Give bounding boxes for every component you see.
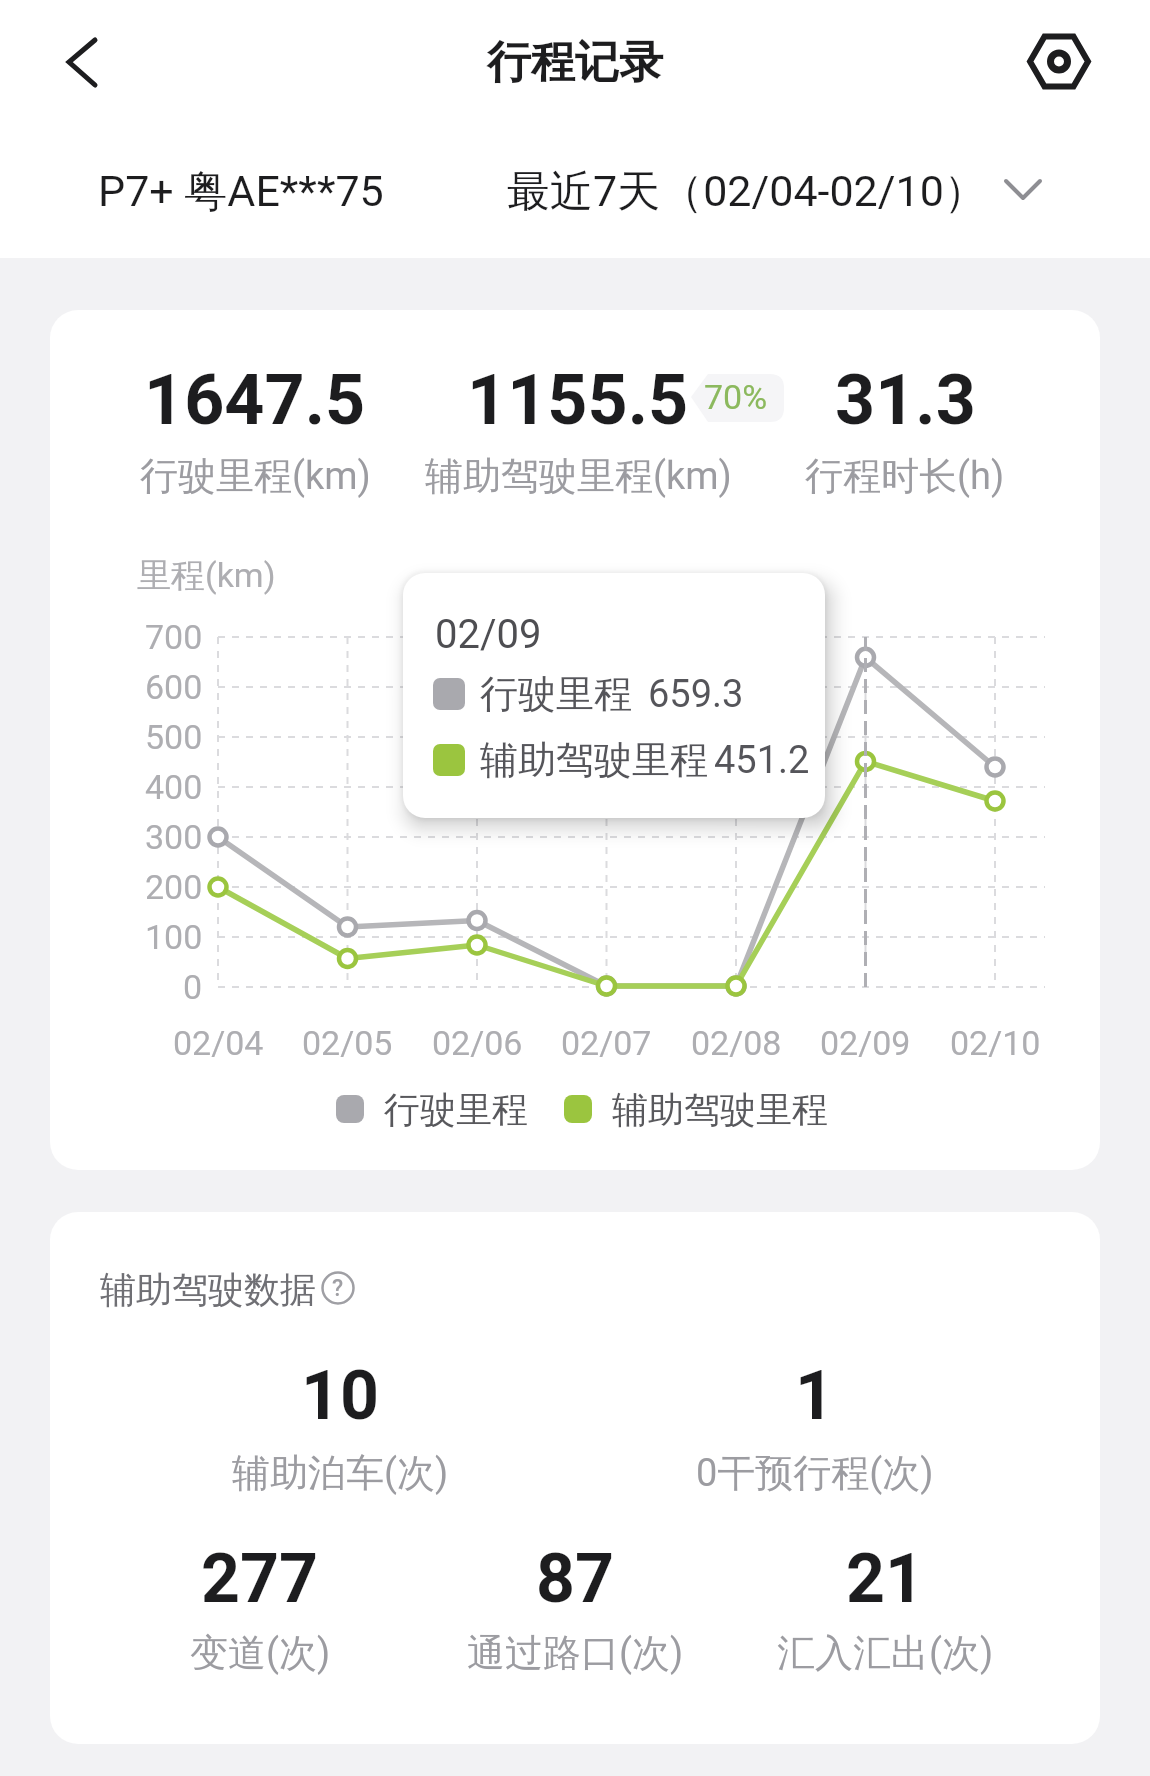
staticText: 277 xyxy=(201,1539,319,1619)
staticText: 里程(km) xyxy=(137,554,276,597)
staticText: 02/04 xyxy=(173,1023,264,1063)
staticText: 21 xyxy=(846,1539,925,1619)
button[interactable]: P7+ 粤AE***75 xyxy=(98,149,428,235)
staticText: 02/09 xyxy=(820,1023,911,1063)
staticText: 1 xyxy=(795,1356,835,1436)
staticText: 70% xyxy=(704,377,768,417)
staticText: 辅助泊车(次) xyxy=(232,1449,449,1497)
staticText: 行驶里程 xyxy=(384,1087,528,1132)
staticText: ? xyxy=(332,1275,344,1302)
staticText: 02/08 xyxy=(691,1023,782,1063)
button[interactable] xyxy=(1015,22,1105,102)
staticText: 200 xyxy=(145,867,203,907)
staticText: 400 xyxy=(145,767,203,807)
staticText: 汇入汇出(次) xyxy=(777,1629,994,1677)
staticText: 辅助驾驶里程 xyxy=(480,736,708,784)
staticText: 700 xyxy=(145,617,203,657)
staticText: 辅助驾驶里程 xyxy=(612,1087,828,1132)
staticText: 0干预行程(次) xyxy=(696,1449,934,1497)
button[interactable] xyxy=(315,1263,365,1313)
staticText: 辅助驾驶里程(km) xyxy=(425,452,732,500)
staticText: 659.3 xyxy=(648,672,744,717)
staticText: 通过路口(次) xyxy=(467,1629,684,1677)
staticText: 行程时长(h) xyxy=(805,452,1005,500)
staticText: 100 xyxy=(145,917,203,957)
staticText: 02/09 xyxy=(435,611,542,658)
staticText: 451.2 xyxy=(714,738,810,783)
staticText: 02/10 xyxy=(950,1023,1041,1063)
button[interactable] xyxy=(40,25,120,100)
staticText: 02/06 xyxy=(432,1023,523,1063)
staticText: 10 xyxy=(301,1356,380,1436)
staticText: 87 xyxy=(536,1539,615,1619)
staticText: 行程记录 xyxy=(487,35,663,90)
staticText: 最近7天（02/04-02/10） xyxy=(507,165,987,219)
staticText: P7+ 粤AE***75 xyxy=(98,165,384,219)
staticText: 600 xyxy=(145,667,203,707)
staticText: 1647.5 xyxy=(144,359,366,441)
staticText: 02/07 xyxy=(561,1023,652,1063)
staticText: 变道(次) xyxy=(190,1629,331,1677)
staticText: 500 xyxy=(145,717,203,757)
staticText: 行驶里程 xyxy=(480,670,632,718)
staticText: 300 xyxy=(145,817,203,857)
staticText: 31.3 xyxy=(835,359,976,441)
staticText: 1155.5 xyxy=(467,359,689,441)
staticText: 辅助驾驶数据 xyxy=(100,1267,316,1312)
staticText: 02/05 xyxy=(302,1023,393,1063)
staticText: 行驶里程(km) xyxy=(140,452,371,500)
staticText: 0 xyxy=(183,967,203,1007)
button[interactable]: 最近7天（02/04-02/10） xyxy=(507,149,1052,235)
